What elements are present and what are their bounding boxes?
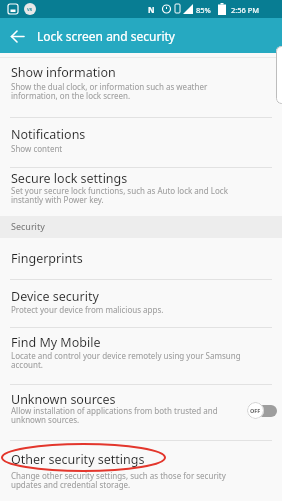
staticText: Other security settings	[11, 451, 145, 468]
button[interactable]: Notifications	[0, 118, 282, 167]
staticText: Show information	[11, 64, 116, 81]
staticText: OFF	[250, 407, 261, 414]
button[interactable]: Device security	[0, 280, 282, 327]
staticText: VR	[27, 7, 33, 12]
staticText: 2:56 PM	[231, 5, 260, 15]
button[interactable]: Find My Mobile	[0, 328, 282, 384]
staticText: Notifications	[11, 126, 86, 143]
staticText: Device security	[11, 288, 99, 305]
staticText: Security	[11, 220, 45, 232]
button[interactable]: Show information	[0, 58, 282, 117]
staticText: Change other security settings, such as …	[11, 470, 226, 491]
staticText: Find My Mobile	[11, 334, 101, 351]
staticText: Locate and control your device remotely …	[11, 350, 241, 371]
button[interactable]: Secure lock settings	[0, 168, 282, 216]
staticText: Unknown sources	[11, 391, 116, 408]
staticText: Show the dual clock, or information such…	[11, 81, 208, 102]
staticText: Fingerprints	[11, 250, 83, 267]
staticText: Secure lock settings	[11, 170, 128, 187]
button[interactable]: Other security settings	[0, 441, 282, 501]
button[interactable]: Fingerprints	[0, 238, 282, 279]
staticText: Protect your device from malicious apps.	[11, 304, 164, 315]
staticText: Lock screen and security	[37, 28, 175, 44]
staticText: N	[148, 4, 155, 15]
staticText: Allow installation of applications from …	[11, 405, 218, 426]
staticText: Set your secure lock functions, such as …	[11, 185, 228, 206]
staticText: Show content	[11, 143, 63, 154]
button[interactable]: Unknown sources	[0, 385, 282, 440]
staticText: 85%	[196, 5, 211, 15]
button[interactable]	[4, 23, 30, 49]
